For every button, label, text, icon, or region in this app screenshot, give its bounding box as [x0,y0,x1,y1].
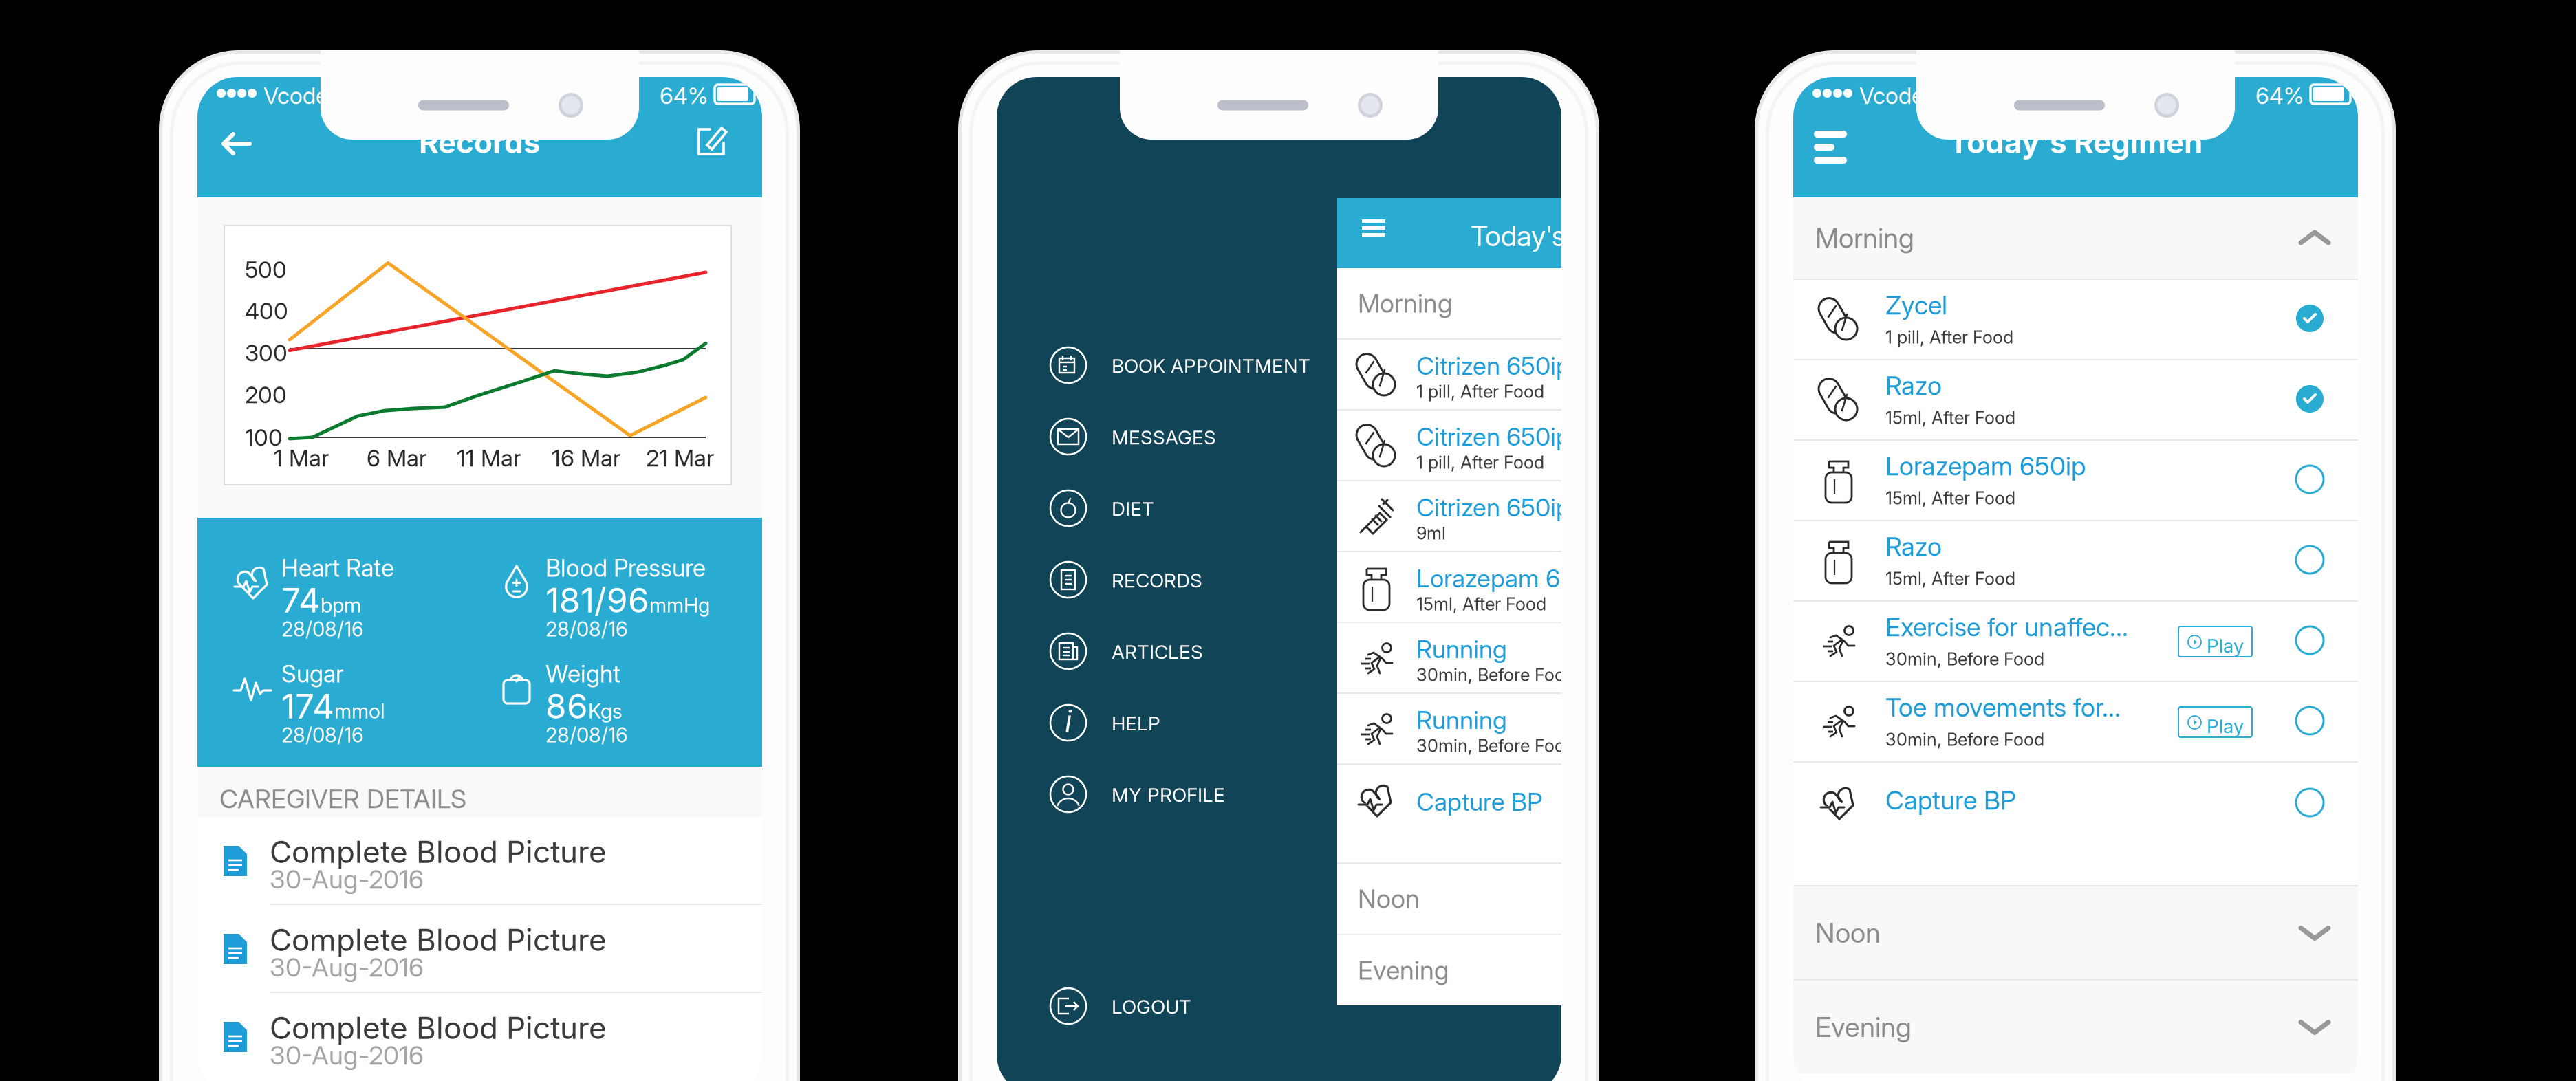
staticText: MY PROFILE [1112,783,1225,807]
button[interactable]: Menu [1800,117,1861,177]
staticText: 16 Mar [552,444,620,472]
staticText: Razo [1885,370,1942,401]
staticText: 30-Aug-2016 [270,864,424,895]
staticText: Vcode [263,82,328,110]
staticText: 15ml, After Food [1885,568,2015,589]
button[interactable]: Complete Blood Picture [197,905,762,992]
staticText: Kgs [588,699,623,723]
button[interactable]: Razo [1793,521,2358,600]
button[interactable]: i [997,687,1382,758]
staticText: 1 pill, After Food [1416,381,1544,402]
staticText: Play [2207,714,2244,738]
button[interactable]: BOOK APPOINTMENT [997,329,1382,401]
staticText: Lorazepam 650ip [1885,450,2086,481]
staticText: Citrizen 650ip [1416,351,1570,381]
staticText: 21 Mar [646,444,714,472]
staticText: mmHg [649,593,710,617]
staticText: Today's [1471,219,1566,253]
button[interactable]: MESSAGES [997,401,1382,472]
staticText: Evening [1815,1010,1912,1044]
staticText: Noon [1358,883,1420,914]
staticText: mmol [334,699,385,723]
staticText: 28/08/16 [545,723,628,747]
staticText: DIET [1112,497,1154,520]
staticText: Noon [1815,916,1881,949]
staticText: ARTICLES [1112,640,1203,664]
staticText: Sugar [281,659,344,688]
staticText: 30min, Before Food [1416,735,1575,756]
staticText: 15ml, After Food [1416,593,1546,615]
staticText: Razo [1885,531,1942,562]
staticText: 1 pill, After Food [1416,452,1544,473]
button[interactable]: DIET [997,472,1382,544]
button[interactable]: Toe movements for... [1793,682,2358,761]
staticText: Records [419,124,541,160]
button[interactable]: Complete Blood Picture [197,993,762,1080]
staticText: 30min, Before Food [1885,729,2044,750]
staticText: 28/08/16 [281,617,364,641]
button[interactable]: MY PROFILE [997,758,1382,830]
staticText: 86 [545,686,588,727]
staticText: Weight [545,659,620,688]
staticText: 6 Mar [367,444,426,472]
staticText: Zycel [1885,290,1947,321]
staticText: Today's Regimen [1949,124,2202,160]
button[interactable]: Noon [1793,886,2358,979]
button[interactable]: Exercise for unaffec... [1793,602,2358,681]
button[interactable]: Lorazepam 650ip [1793,441,2358,520]
button[interactable]: Complete Blood Picture [197,817,762,904]
staticText: Morning [1815,221,1914,255]
button[interactable]: Zycel [1793,280,2358,359]
button[interactable]: Razo [1793,360,2358,439]
staticText: CAREGIVER DETAILS [219,783,466,814]
staticText: Complete Blood Picture [270,921,607,958]
staticText: 174 [281,686,334,727]
staticText: LOGOUT [1112,995,1191,1018]
staticText: Citrizen 650ip [1416,422,1570,452]
staticText: Morning [1358,288,1453,319]
staticText: 15ml, After Food [1885,407,2015,428]
staticText: Exercise for unaffec... [1885,611,2128,642]
button[interactable]: Capture BP [1793,763,2358,885]
staticText: 181/96 [545,580,649,621]
button[interactable]: Compose [684,113,742,171]
staticText: Heart Rate [281,554,394,582]
button[interactable]: Morning [1793,197,2358,279]
staticText: 400 [245,297,288,325]
staticText: 30min, Before Food [1416,664,1575,685]
staticText: bpm [321,593,361,617]
staticText: Lorazepam 650ip [1416,563,1610,593]
button[interactable]: Evening [1793,981,2358,1073]
staticText: 30-Aug-2016 [270,952,424,983]
staticText: Vcode [1859,82,1924,110]
staticText: Toe movements for... [1885,692,2121,723]
staticText: 1 pill, After Food [1885,327,2013,348]
staticText: 11 Mar [457,444,521,472]
staticText: RECORDS [1112,569,1202,592]
staticText: HELP [1112,712,1160,735]
staticText: 300 [245,339,288,367]
staticText: 64% [2255,82,2304,110]
button[interactable]: Back [206,117,266,171]
staticText: 30min, Before Food [1885,648,2044,670]
staticText: i [1065,704,1072,739]
staticText: 9ml [1416,523,1446,544]
staticText: 15ml, After Food [1885,488,2015,509]
button[interactable]: ARTICLES [997,615,1382,687]
staticText: Running [1416,634,1507,664]
staticText: 64% [660,82,708,110]
staticText: Capture BP [1416,787,1542,817]
staticText: Play [2207,634,2244,657]
staticText: Evening [1358,955,1449,986]
staticText: 74 [281,580,321,621]
staticText: 30-Aug-2016 [270,1040,424,1071]
staticText: BOOK APPOINTMENT [1112,354,1310,377]
staticText: Blood Pressure [545,554,706,582]
staticText: Capture BP [1885,785,2016,816]
staticText: 1 Mar [274,444,329,472]
staticText: Citrizen 650ip [1416,492,1570,522]
button[interactable]: LOGOUT [997,970,1382,1042]
staticText: 500 [245,256,287,284]
staticText: Running [1416,705,1507,735]
button[interactable]: RECORDS [997,544,1382,615]
